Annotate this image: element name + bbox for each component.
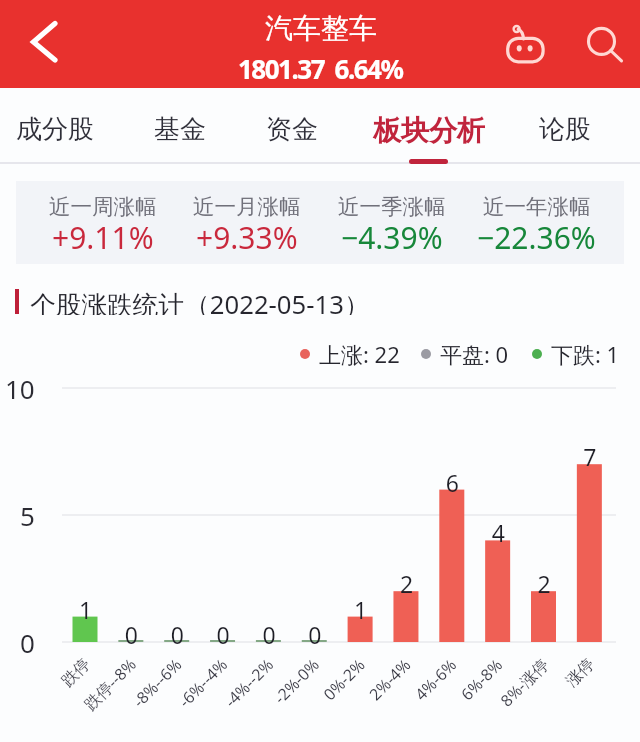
staticText: 基金 [154, 113, 206, 146]
staticText: 近一年涨幅 [483, 193, 591, 220]
staticText: +9.11% [52, 217, 154, 258]
staticText: −22.36% [477, 217, 596, 258]
staticText: 近一周涨幅 [49, 193, 157, 220]
staticText: −4.39% [341, 217, 443, 258]
button[interactable]: 基金 [118, 88, 242, 163]
button[interactable]: 资金 [230, 88, 354, 163]
staticText: 论股 [539, 113, 591, 146]
staticText: 平盘: 0 [440, 339, 509, 369]
staticText: 资金 [266, 113, 318, 146]
staticText: 近一季涨幅 [338, 193, 446, 220]
staticText: 汽车整车 [265, 11, 377, 46]
button[interactable]: Search [578, 16, 634, 72]
staticText: 成分股 [16, 113, 94, 146]
staticText: 下跌: 1 [551, 339, 620, 369]
staticText: +9.33% [196, 217, 298, 258]
button[interactable]: 板块分析 [367, 88, 491, 163]
button[interactable]: 成分股 [0, 88, 117, 163]
staticText: 1801.37 6.64% [238, 51, 403, 86]
staticText: 板块分析 [373, 113, 485, 148]
button[interactable]: AI assistant [500, 20, 556, 76]
button[interactable]: Back [8, 14, 68, 74]
staticText: 近一月涨幅 [193, 193, 301, 220]
staticText: 个股涨跌统计（2022-05-13） [30, 287, 370, 315]
staticText: 上涨: 22 [319, 339, 400, 369]
button[interactable]: 论股 [503, 88, 627, 163]
